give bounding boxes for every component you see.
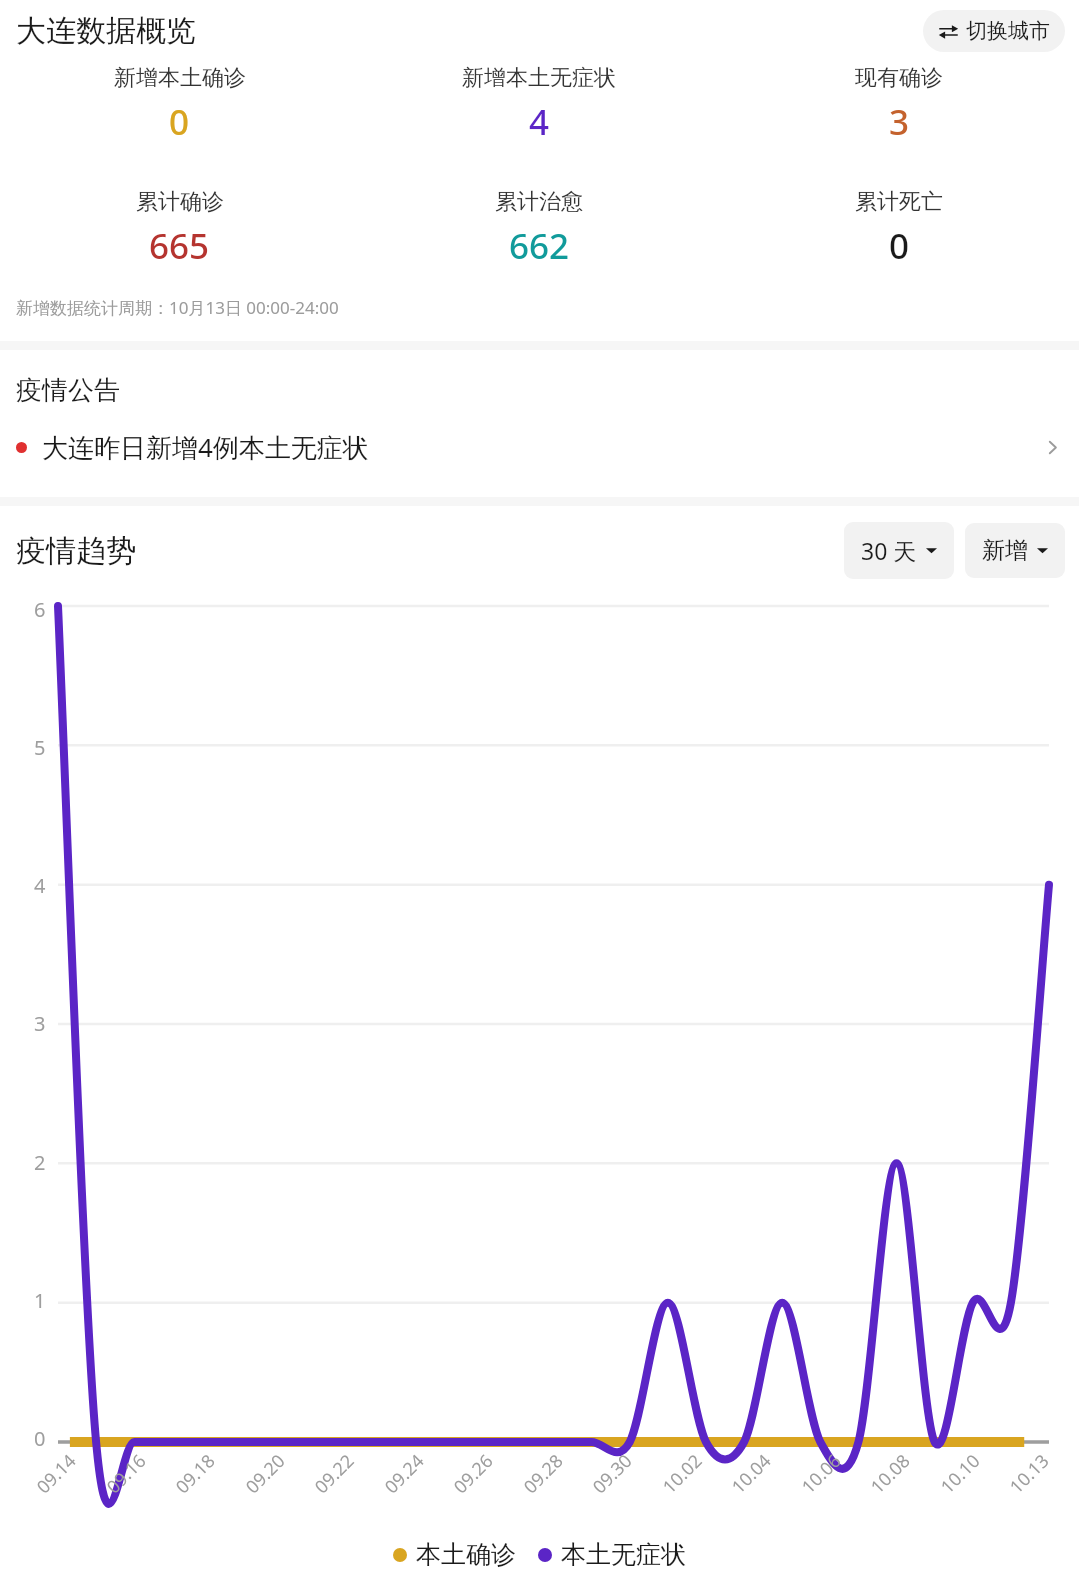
button[interactable]: 30 天: [844, 522, 954, 579]
staticText: 新增: [982, 536, 1028, 565]
staticText: 3: [34, 1010, 46, 1037]
staticText: 新增数据统计周期：10月13日 00:00-24:00: [16, 296, 339, 319]
staticText: 2: [34, 1149, 46, 1176]
staticText: 疫情趋势: [16, 532, 136, 570]
staticText: 10.13: [1004, 1448, 1055, 1499]
staticText: 10.08: [865, 1448, 916, 1499]
staticText: 5: [34, 734, 46, 761]
button[interactable]: 新增本土确诊: [0, 64, 359, 146]
staticText: 09.28: [518, 1448, 569, 1499]
staticText: 09.24: [379, 1448, 430, 1499]
staticText: 切换城市: [966, 18, 1050, 44]
staticText: 0: [34, 1425, 46, 1452]
staticText: 10.10: [935, 1448, 986, 1499]
button[interactable]: 切换城市: [923, 10, 1065, 52]
staticText: 0: [169, 98, 190, 146]
staticText: 10.02: [657, 1448, 708, 1499]
button[interactable]: 新增: [965, 523, 1065, 578]
staticText: 大连数据概览: [16, 12, 196, 50]
staticText: 10.06: [796, 1448, 847, 1499]
staticText: 09.30: [587, 1448, 638, 1499]
staticText: 10.04: [726, 1448, 777, 1499]
staticText: 疫情公告: [16, 374, 120, 407]
other: 查看详情: [1044, 439, 1061, 456]
staticText: 665: [149, 222, 210, 270]
staticText: 09.16: [101, 1448, 152, 1499]
button[interactable]: 累计确诊: [0, 188, 359, 270]
staticText: 1: [34, 1287, 46, 1314]
staticText: 本土无症状: [561, 1539, 686, 1570]
staticText: 新增本土确诊: [114, 64, 246, 92]
staticText: 4: [34, 872, 46, 899]
staticText: 4: [529, 98, 550, 146]
staticText: 现有确诊: [855, 64, 943, 92]
staticText: 662: [509, 222, 570, 270]
staticText: 本土确诊: [416, 1539, 516, 1570]
button[interactable]: 新增本土无症状: [359, 64, 719, 146]
staticText: 09.22: [309, 1448, 360, 1499]
staticText: 新增本土无症状: [462, 64, 616, 92]
staticText: 累计死亡: [855, 188, 943, 216]
staticText: 累计治愈: [495, 188, 583, 216]
staticText: 09.26: [448, 1448, 499, 1499]
button[interactable]: 累计治愈: [359, 188, 719, 270]
staticText: 累计确诊: [136, 188, 224, 216]
staticText: 09.20: [240, 1448, 291, 1499]
staticText: 3: [889, 98, 910, 146]
staticText: 0: [889, 222, 910, 270]
button[interactable]: 大连昨日新增4例本土无症状: [0, 407, 1079, 487]
button[interactable]: 现有确诊: [719, 64, 1079, 146]
staticText: 09.18: [170, 1448, 221, 1499]
staticText: 大连昨日新增4例本土无症状: [42, 429, 369, 465]
staticText: 6: [34, 596, 46, 623]
button[interactable]: 累计死亡: [719, 188, 1079, 270]
staticText: 09.14: [31, 1448, 82, 1499]
staticText: 30 天: [861, 535, 917, 566]
